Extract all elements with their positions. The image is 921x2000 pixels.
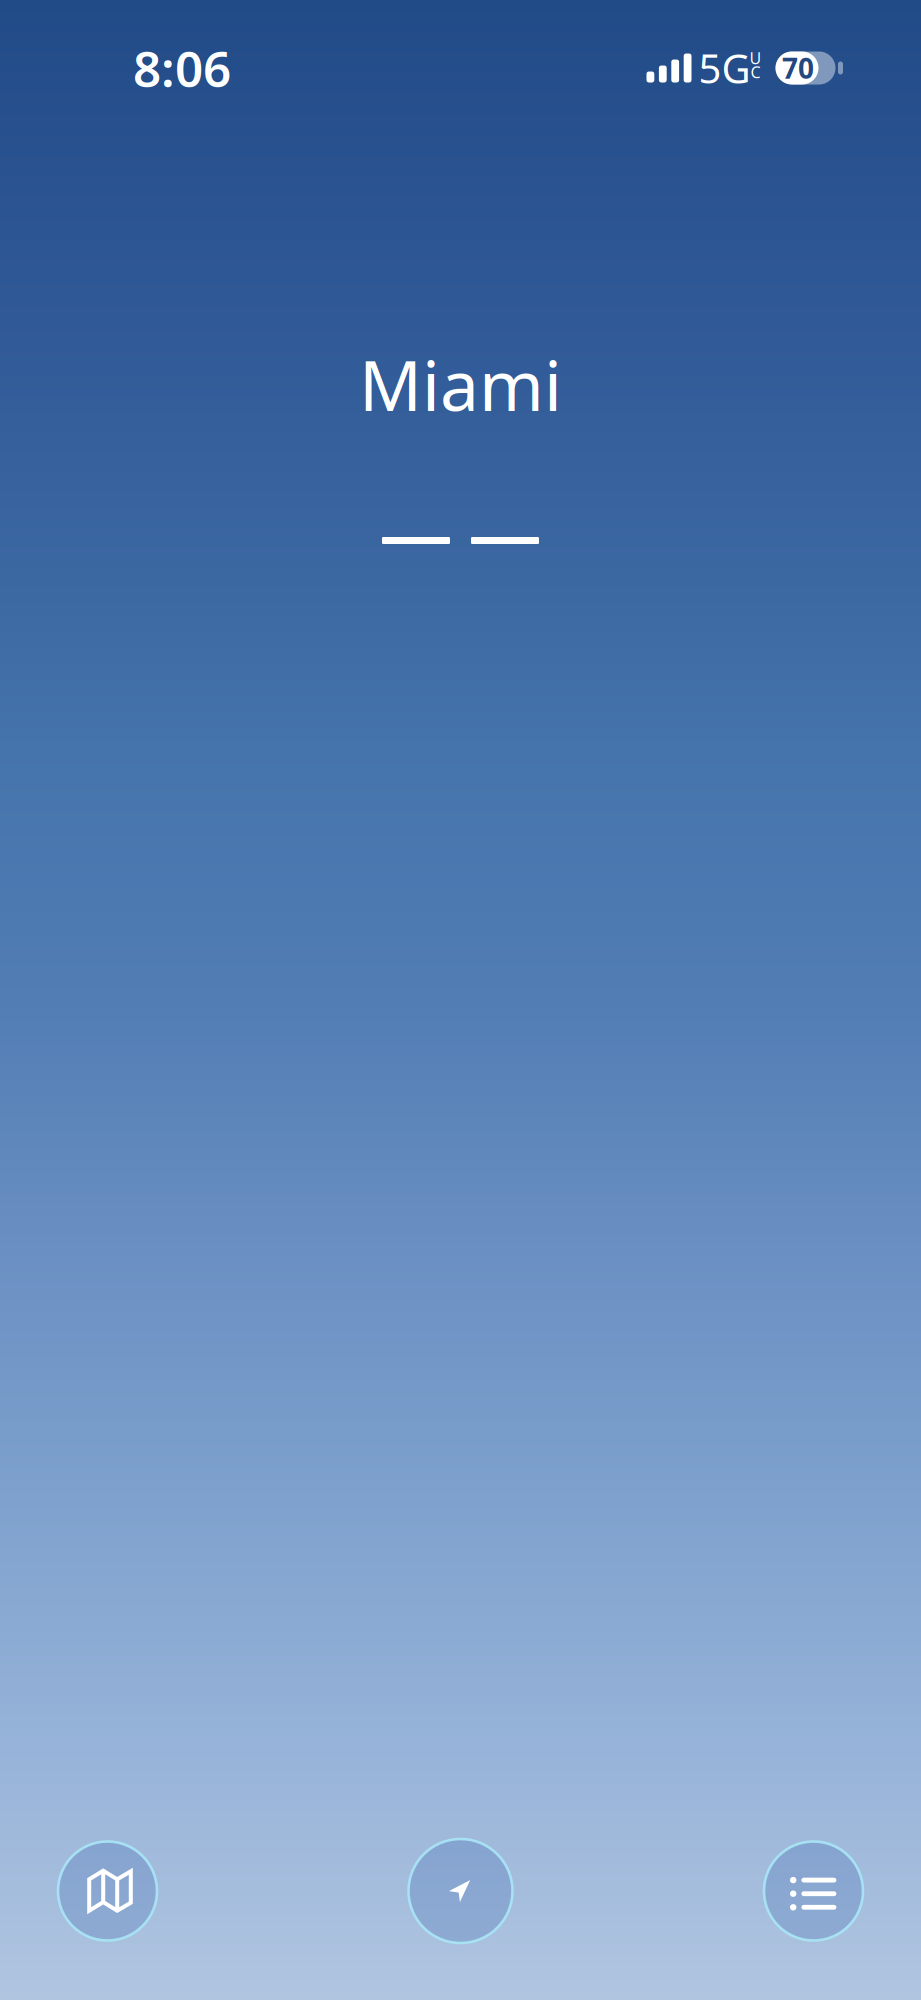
staticText: C — [750, 61, 760, 83]
staticText: Miami — [359, 338, 562, 430]
staticText: 5G — [698, 41, 750, 94]
button[interactable]: Location List — [764, 1841, 863, 1940]
button[interactable]: Weather Map — [58, 1841, 157, 1940]
staticText: 70 — [782, 49, 814, 87]
staticText: U — [749, 47, 761, 69]
button[interactable]: Current Location — [408, 1839, 512, 1943]
staticText: 8:06 — [133, 35, 231, 101]
